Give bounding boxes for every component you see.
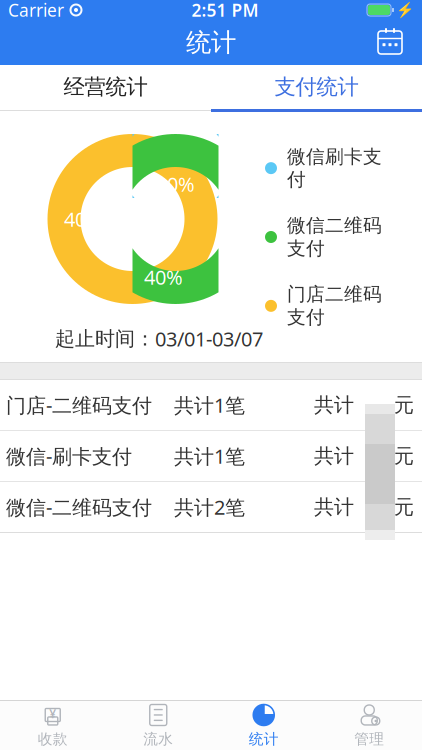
staticText: 微信二维码支付 [287,214,382,260]
staticText: 共计1笔 [174,392,245,418]
staticText: 20% [156,171,195,197]
staticText: 管理 [354,730,384,748]
button[interactable]: 支付统计 [211,65,422,109]
staticText: 经营统计 [63,74,147,100]
staticText: 门店-二维码支付 [6,392,152,418]
staticText: 支付统计 [274,74,358,100]
staticText: 共计2笔 [174,494,245,520]
button[interactable]: 微信-刷卡支付 [0,431,422,481]
staticText: 微信刷卡支付 [287,145,382,191]
staticText: 统计 [249,730,279,748]
staticText: ⚡ [396,2,414,18]
button[interactable]: 流水 [105,701,211,750]
staticText: 元 [394,495,414,519]
button[interactable]: 管理 [316,701,422,750]
staticText: ¥ [49,705,56,721]
staticText: 共计 [314,393,354,417]
button[interactable]: 选择日期 [366,22,414,62]
staticText: 共计1笔 [174,443,245,469]
staticText: 2:51 PM [191,0,258,21]
staticText: 元 [394,393,414,417]
button[interactable]: 经营统计 [0,65,211,109]
staticText: 元 [394,444,414,468]
button[interactable]: 门店-二维码支付 [0,380,422,430]
staticText: 微信-二维码支付 [6,494,152,520]
staticText: 40% [64,206,103,232]
staticText: 流水 [143,730,173,748]
staticText: 门店二维码支付 [287,283,382,329]
staticText: 40% [144,264,183,290]
button[interactable]: 微信-二维码支付 [0,482,422,532]
button[interactable]: ¥ [0,701,105,750]
staticText: 微信-刷卡支付 [6,443,132,469]
staticText: 03/01-03/07 [155,325,263,352]
staticText: 共计 [314,495,354,519]
staticText: 收款 [38,730,68,748]
staticText: Carrier [8,0,64,21]
staticText: 共计 [314,444,354,468]
staticText: 起止时间： [55,326,155,351]
staticText: 统计 [186,27,236,58]
button[interactable]: 统计 [211,701,316,750]
